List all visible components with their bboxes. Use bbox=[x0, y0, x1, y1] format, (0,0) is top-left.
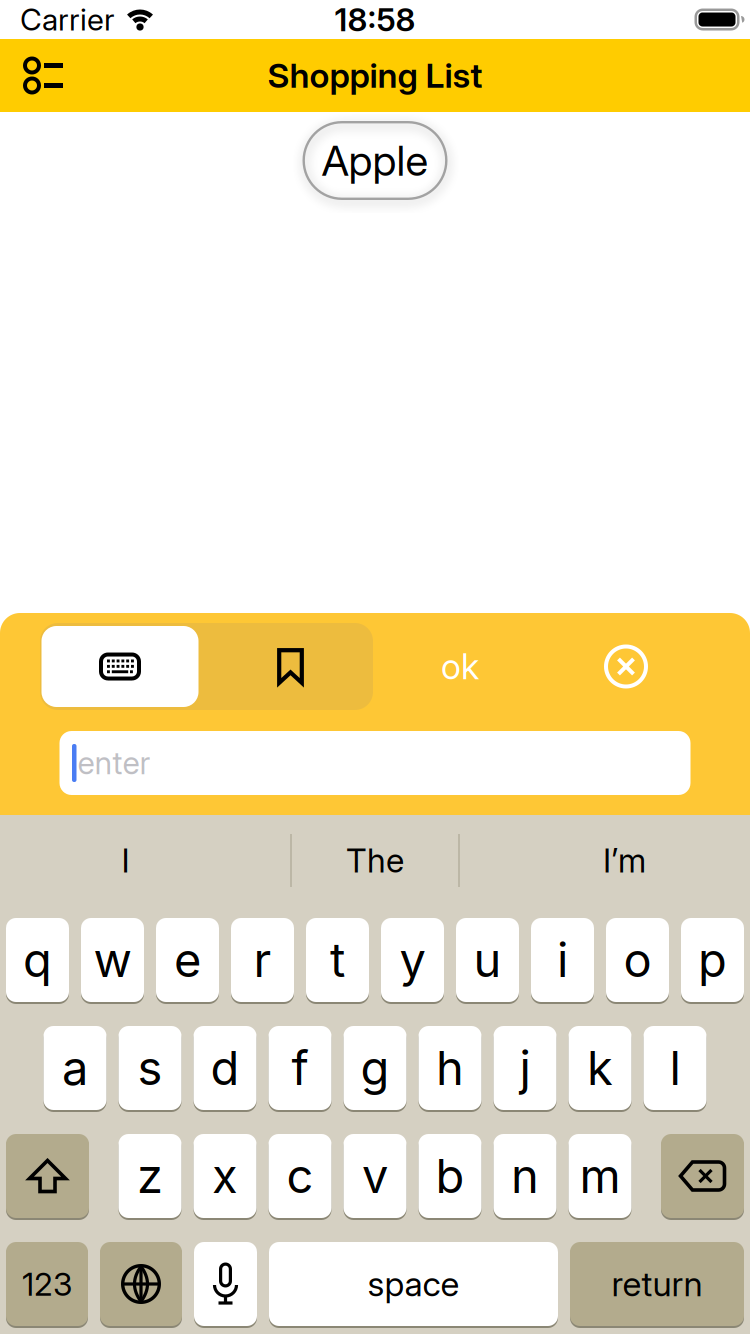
button[interactable]: a bbox=[43, 1025, 106, 1111]
staticText: 123 bbox=[22, 1265, 72, 1303]
button[interactable]: t bbox=[306, 917, 369, 1003]
staticText: t bbox=[330, 932, 345, 988]
staticText: n bbox=[511, 1148, 539, 1204]
button[interactable]: k bbox=[568, 1025, 631, 1111]
button[interactable]: Lists bbox=[13, 39, 73, 112]
button[interactable]: I’m bbox=[500, 814, 749, 907]
button[interactable]: Shift bbox=[6, 1133, 89, 1219]
staticText: i bbox=[557, 932, 568, 988]
button[interactable]: h bbox=[418, 1025, 481, 1111]
staticText: q bbox=[23, 932, 52, 988]
staticText: u bbox=[473, 932, 501, 988]
staticText: I bbox=[121, 840, 129, 880]
staticText: x bbox=[212, 1148, 238, 1204]
button[interactable]: d bbox=[193, 1025, 256, 1111]
staticText: a bbox=[62, 1040, 88, 1096]
button[interactable]: p bbox=[681, 917, 744, 1003]
staticText: v bbox=[362, 1148, 388, 1204]
button[interactable]: The bbox=[250, 814, 500, 907]
staticText: l bbox=[669, 1040, 680, 1096]
staticText: z bbox=[137, 1148, 163, 1204]
staticText: j bbox=[519, 1040, 530, 1096]
staticText: c bbox=[286, 1148, 313, 1204]
staticText: h bbox=[436, 1040, 464, 1096]
button[interactable]: b bbox=[418, 1133, 481, 1219]
button[interactable]: g bbox=[343, 1025, 406, 1111]
staticText: return bbox=[611, 1263, 702, 1304]
staticText: s bbox=[137, 1040, 162, 1096]
button[interactable]: n bbox=[493, 1133, 556, 1219]
staticText: f bbox=[291, 1040, 308, 1096]
staticText: enter bbox=[77, 744, 150, 782]
staticText: p bbox=[698, 932, 727, 988]
staticText: w bbox=[93, 932, 131, 988]
button[interactable]: Apple bbox=[302, 121, 447, 200]
button[interactable]: q bbox=[6, 917, 69, 1003]
button[interactable]: w bbox=[81, 917, 144, 1003]
button[interactable]: Next keyboard bbox=[100, 1241, 182, 1327]
button[interactable]: s bbox=[118, 1025, 181, 1111]
button[interactable]: ok bbox=[373, 623, 547, 710]
button[interactable]: o bbox=[606, 917, 669, 1003]
staticText: I’m bbox=[603, 840, 646, 880]
button[interactable]: j bbox=[493, 1025, 556, 1111]
staticText: e bbox=[174, 932, 201, 988]
button[interactable]: x bbox=[193, 1133, 256, 1219]
staticText: m bbox=[579, 1148, 620, 1204]
button[interactable]: r bbox=[231, 917, 294, 1003]
staticText: space bbox=[367, 1263, 459, 1304]
button[interactable]: e bbox=[156, 917, 219, 1003]
button[interactable]: I bbox=[1, 814, 250, 907]
staticText: y bbox=[399, 932, 425, 988]
staticText: r bbox=[253, 932, 271, 988]
staticText: ok bbox=[441, 645, 479, 688]
staticText: d bbox=[210, 1040, 239, 1096]
button[interactable]: 123 bbox=[6, 1241, 88, 1327]
button[interactable]: Keyboard bbox=[41, 626, 198, 707]
button[interactable]: u bbox=[456, 917, 519, 1003]
button[interactable]: y bbox=[381, 917, 444, 1003]
button[interactable]: z bbox=[118, 1133, 181, 1219]
staticText: The bbox=[346, 840, 404, 880]
button[interactable]: enter bbox=[59, 731, 690, 795]
button[interactable]: Close bbox=[604, 644, 648, 688]
staticText: o bbox=[623, 932, 651, 988]
button[interactable]: m bbox=[568, 1133, 631, 1219]
staticText: Apple bbox=[321, 135, 428, 186]
button[interactable]: Bookmarks bbox=[206, 623, 374, 710]
staticText: Shopping List bbox=[267, 55, 482, 96]
button[interactable]: f bbox=[268, 1025, 331, 1111]
button[interactable]: Dictate bbox=[194, 1241, 257, 1327]
button[interactable]: v bbox=[343, 1133, 406, 1219]
button[interactable]: Delete bbox=[661, 1133, 744, 1219]
staticText: b bbox=[435, 1148, 464, 1204]
button[interactable]: i bbox=[531, 917, 594, 1003]
staticText: k bbox=[587, 1040, 613, 1096]
button[interactable]: space bbox=[269, 1241, 558, 1327]
staticText: g bbox=[360, 1040, 389, 1096]
staticText: Carrier bbox=[20, 1, 115, 38]
staticText: 18:58 bbox=[334, 0, 415, 39]
button[interactable]: l bbox=[643, 1025, 706, 1111]
button[interactable]: c bbox=[268, 1133, 331, 1219]
button[interactable]: return bbox=[570, 1241, 744, 1327]
